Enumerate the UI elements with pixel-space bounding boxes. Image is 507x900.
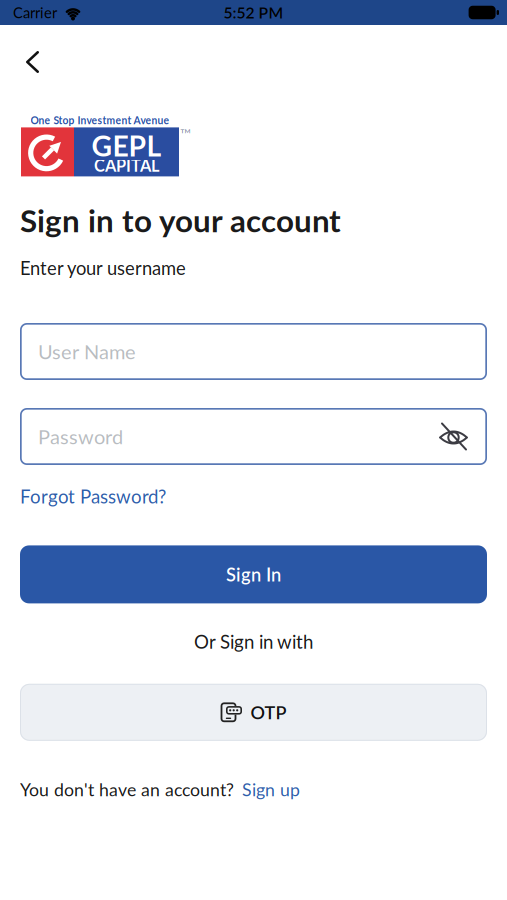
staticText: Password: [38, 424, 123, 448]
staticText: User Name: [38, 339, 136, 363]
button[interactable]: Password: [20, 408, 487, 465]
staticText: Sign up: [242, 779, 300, 800]
staticText: 5:52 PM: [223, 3, 283, 22]
staticText: OTP: [250, 701, 286, 723]
button[interactable]: [26, 51, 39, 73]
staticText: Sign In: [226, 563, 281, 585]
staticText: CAPITAL: [94, 156, 159, 175]
staticText: Forgot Password?: [20, 485, 166, 507]
staticText: You don't have an account?: [20, 779, 234, 800]
button[interactable]: Sign up: [242, 779, 300, 800]
staticText: TM: [180, 127, 190, 135]
button[interactable]: Sign In: [20, 545, 487, 603]
staticText: One Stop Investment Avenue: [30, 114, 169, 126]
button[interactable]: Forgot Password?: [20, 485, 166, 507]
button[interactable]: OTP: [20, 684, 487, 741]
button[interactable]: User Name: [20, 323, 487, 380]
staticText: Carrier: [13, 4, 57, 21]
staticText: Enter your username: [20, 257, 186, 279]
staticText: Or Sign in with: [194, 630, 313, 653]
staticText: GEPL: [91, 128, 161, 162]
staticText: Sign in to your account: [20, 201, 341, 239]
